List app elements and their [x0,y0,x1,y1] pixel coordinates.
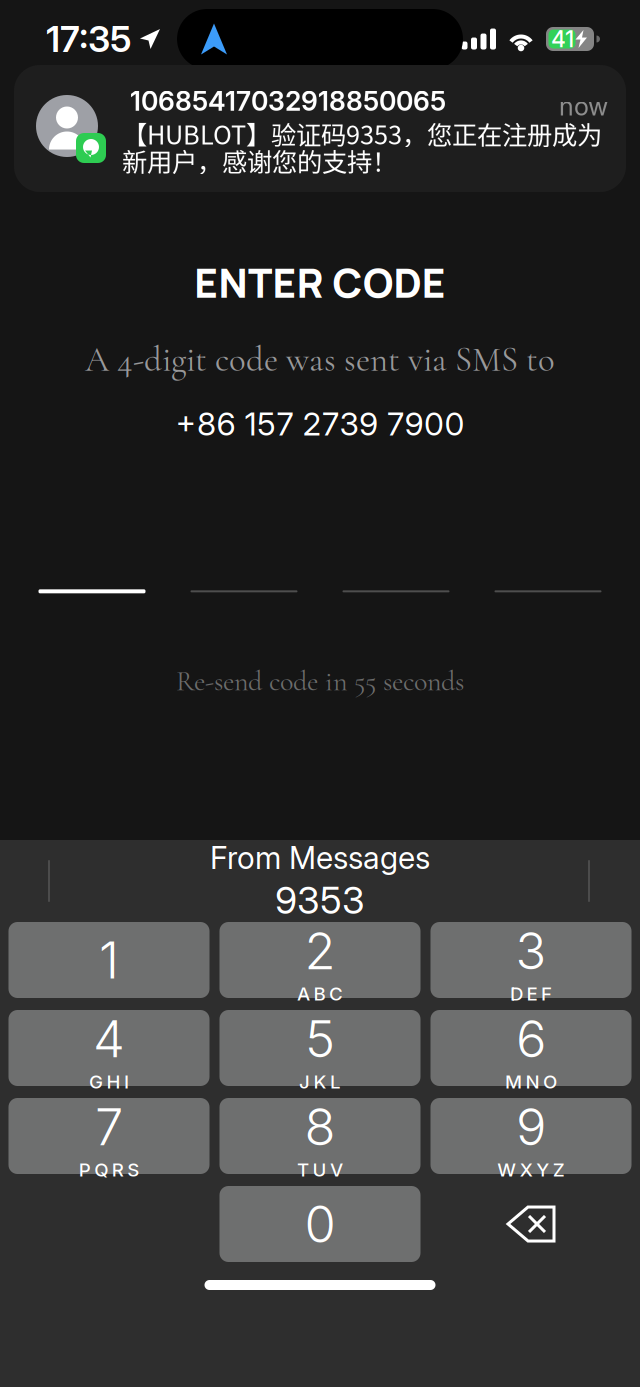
staticText: 2 [304,920,335,981]
staticText: 0 [304,1193,335,1255]
button[interactable]: 7 [8,1098,209,1174]
staticText: 新用户，感谢您的支持！ [122,142,397,179]
staticText: 1 [99,929,119,991]
staticText: TUV [297,1158,343,1181]
staticText: From Messages [210,839,430,876]
staticText: A 4-digit code was sent via SMS to [85,339,555,381]
staticText: 6 [516,1008,546,1069]
staticText: DEF [510,982,552,1005]
staticText: now [559,91,608,122]
staticText: 【HUBLOT】验证码9353，您正在注册成为 [122,115,602,152]
staticText: PQRS [79,1158,139,1181]
button[interactable]: 10685417032918850065 [14,65,626,192]
staticText: JKL [299,1070,341,1093]
button[interactable]: 8 [219,1098,420,1174]
button[interactable]: 6 [430,1010,631,1086]
button[interactable]: 0 [219,1186,420,1262]
staticText: 10685417032918850065 [130,85,446,117]
staticText: ENTER CODE [194,255,446,310]
button[interactable]: 1 [8,922,209,998]
button[interactable]: 4 [8,1010,209,1086]
staticText: 4 [93,1008,125,1069]
button[interactable]: 9 [430,1098,631,1174]
button[interactable]: From Messages [110,849,530,913]
button[interactable]: 3 [430,922,631,998]
button[interactable]: 2 [219,922,420,998]
staticText: 5 [305,1008,335,1069]
staticText: +86 157 2739 7900 [175,405,464,443]
staticText: 7 [95,1096,123,1157]
staticText: MNO [505,1070,557,1093]
staticText: GHI [89,1070,129,1093]
staticText: ABC [297,982,343,1005]
button[interactable]: 5 [219,1010,420,1086]
staticText: WXYZ [497,1158,565,1181]
staticText: Re-send code in 55 seconds [176,664,464,698]
button[interactable]: Delete [430,1186,631,1262]
staticText: 17:35 [46,17,132,61]
staticText: 8 [304,1096,335,1157]
staticText: 9353 [275,877,365,923]
staticText: 3 [515,920,546,981]
staticText: 41 [551,25,574,53]
staticText: 9 [516,1096,546,1157]
